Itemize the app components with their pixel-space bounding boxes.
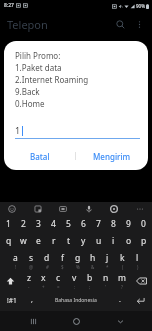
- button[interactable]: Bahasa Indonesia: [40, 291, 112, 309]
- button[interactable]: 9: [121, 216, 136, 231]
- button[interactable]: Backspace: [130, 271, 152, 291]
- staticText: k: [120, 252, 125, 264]
- staticText: d: [44, 252, 50, 264]
- button[interactable]: f: [55, 251, 70, 271]
- button[interactable]: y: [76, 231, 91, 251]
- staticText: Mengirim: [93, 151, 131, 162]
- button[interactable]: Recents: [22, 311, 44, 331]
- staticText: p: [141, 235, 147, 247]
- staticText: ;: [89, 284, 91, 290]
- staticText: u: [96, 235, 102, 247]
- button[interactable]: g: [70, 251, 85, 271]
- button[interactable]: More: [134, 203, 146, 215]
- button[interactable]: Back: [109, 311, 131, 331]
- button[interactable]: Stickers: [32, 203, 44, 215]
- staticText: b: [87, 272, 93, 284]
- button[interactable]: 2: [16, 216, 31, 231]
- button[interactable]: 6: [76, 216, 91, 231]
- staticText: 9.Back: [15, 86, 40, 97]
- staticText: ': [105, 284, 107, 290]
- button[interactable]: n: [98, 271, 114, 291]
- button[interactable]: Shift: [0, 271, 21, 291]
- staticText: 0.Home: [15, 98, 45, 109]
- button[interactable]: a: [7, 251, 23, 271]
- button[interactable]: j: [100, 251, 115, 271]
- button[interactable]: t: [61, 231, 76, 251]
- staticText: h: [90, 252, 96, 264]
- button[interactable]: 8: [106, 216, 121, 231]
- button[interactable]: h: [85, 251, 100, 271]
- button[interactable]: k: [115, 251, 130, 271]
- staticText: n: [103, 272, 109, 284]
- staticText: *: [106, 264, 109, 270]
- button[interactable]: d: [39, 251, 55, 271]
- button[interactable]: c: [51, 271, 66, 291]
- staticText: 2: [21, 218, 26, 230]
- button[interactable]: 1: [1, 216, 16, 231]
- staticText: =: [57, 284, 60, 290]
- staticText: :: [74, 284, 76, 290]
- button[interactable]: 5: [61, 216, 76, 231]
- staticText: v: [72, 272, 77, 284]
- button[interactable]: !#1: [0, 291, 24, 309]
- button[interactable]: Settings: [108, 203, 120, 215]
- staticText: 5: [66, 218, 71, 230]
- staticText: o: [126, 235, 132, 247]
- staticText: g: [75, 252, 81, 264]
- button[interactable]: Emoji: [6, 203, 18, 215]
- staticText: q: [6, 235, 12, 247]
- staticText: Bahasa Indonesia: [55, 297, 97, 304]
- button[interactable]: u: [91, 231, 106, 251]
- button[interactable]: s: [23, 251, 39, 271]
- staticText: j: [106, 252, 109, 264]
- staticText: l: [136, 252, 139, 264]
- button[interactable]: Enter: [128, 291, 152, 309]
- button[interactable]: 3: [31, 216, 46, 231]
- button[interactable]: Batal: [4, 146, 75, 166]
- staticText: c: [56, 272, 61, 284]
- button[interactable]: o: [121, 231, 136, 251]
- staticText: !#1: [7, 296, 17, 305]
- button[interactable]: x: [36, 271, 51, 291]
- button[interactable]: v: [66, 271, 82, 291]
- staticText: ,: [31, 295, 33, 305]
- staticText: 8: [111, 218, 116, 230]
- button[interactable]: 4: [46, 216, 61, 231]
- button[interactable]: m: [114, 271, 130, 291]
- staticText: 8:27: [4, 2, 14, 9]
- button[interactable]: Mengirim: [76, 146, 148, 166]
- staticText: e: [36, 235, 41, 247]
- button[interactable]: e: [31, 231, 46, 251]
- button[interactable]: 7: [91, 216, 106, 231]
- staticText: Pilih Promo:: [15, 50, 61, 61]
- button[interactable]: l: [130, 251, 145, 271]
- button[interactable]: w: [16, 231, 31, 251]
- button[interactable]: i: [106, 231, 121, 251]
- button[interactable]: Search: [110, 14, 130, 34]
- staticText: +: [42, 284, 45, 290]
- staticText: %: [76, 264, 80, 270]
- button[interactable]: ,: [24, 291, 40, 309]
- staticText: $: [61, 264, 64, 270]
- staticText: .: [119, 295, 121, 305]
- staticText: r: [52, 235, 56, 247]
- staticText: 7: [96, 218, 101, 230]
- staticText: Telepon: [7, 17, 48, 32]
- staticText: ?: [121, 284, 123, 290]
- staticText: (: [122, 264, 124, 270]
- button[interactable]: q: [1, 231, 16, 251]
- button[interactable]: More options: [130, 15, 148, 33]
- button[interactable]: r: [46, 231, 61, 251]
- button[interactable]: .: [112, 291, 128, 309]
- button[interactable]: 0: [136, 216, 151, 231]
- staticText: -: [28, 284, 30, 290]
- button[interactable]: z: [21, 271, 36, 291]
- button[interactable]: b: [82, 271, 98, 291]
- button[interactable]: Home: [65, 311, 87, 331]
- staticText: z: [27, 272, 31, 284]
- staticText: 3: [36, 218, 41, 230]
- button[interactable]: p: [136, 231, 151, 251]
- button[interactable]: Voice input: [83, 203, 95, 215]
- button[interactable]: GIF: [57, 203, 69, 215]
- staticText: @: [29, 264, 34, 270]
